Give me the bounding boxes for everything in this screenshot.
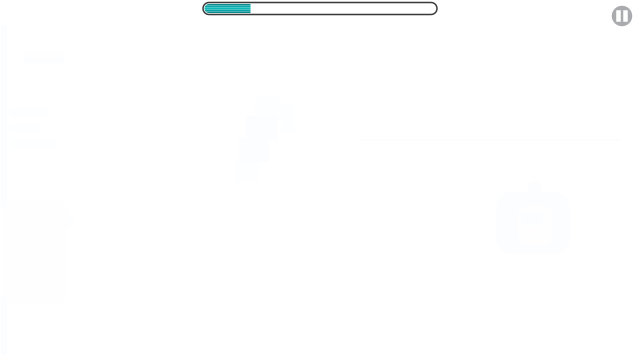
button[interactable]: Pause: [609, 3, 635, 29]
